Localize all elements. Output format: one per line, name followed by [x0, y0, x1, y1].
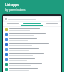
button[interactable]: [3, 27, 61, 32]
button[interactable]: [4, 23, 21, 24]
button[interactable]: [3, 52, 61, 57]
staticText: by permissions: [5, 8, 26, 12]
button[interactable]: [3, 62, 61, 67]
button[interactable]: [21, 23, 43, 24]
button[interactable]: Search apps: [4, 17, 60, 21]
button[interactable]: [43, 23, 60, 24]
button[interactable]: [3, 67, 61, 72]
staticText: List apps: [5, 3, 19, 7]
button[interactable]: [3, 37, 61, 42]
button[interactable]: [3, 42, 61, 47]
button[interactable]: [3, 47, 61, 52]
button[interactable]: [3, 57, 61, 62]
button[interactable]: [3, 32, 61, 37]
